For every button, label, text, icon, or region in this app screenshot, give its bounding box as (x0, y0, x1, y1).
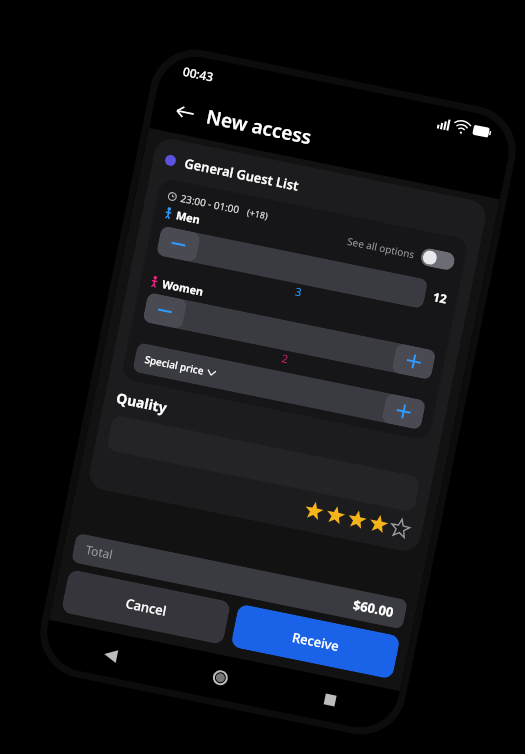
staticText: Women (161, 276, 205, 299)
button[interactable]: Decrease (142, 292, 187, 329)
staticText: (+18) (246, 205, 269, 221)
button[interactable]: Add special price (381, 393, 426, 430)
button[interactable]: Back (168, 95, 201, 128)
button[interactable]: Cancel (61, 569, 231, 645)
button[interactable]: Increase (391, 343, 436, 380)
staticText: New access (204, 103, 314, 150)
staticText: See all options (346, 234, 416, 261)
button[interactable]: See all options toggle (419, 247, 456, 271)
staticText: Special price (144, 352, 205, 378)
staticText: 00:43 (182, 63, 215, 85)
staticText: Men (175, 207, 202, 227)
button[interactable]: Recents (317, 686, 343, 712)
staticText: Cancel (124, 594, 169, 620)
staticText: 2 (280, 350, 290, 366)
button[interactable]: Back (97, 642, 123, 668)
button[interactable]: Receive (230, 603, 401, 679)
staticText: Receive (291, 628, 341, 655)
button[interactable]: Home (207, 664, 233, 690)
button[interactable]: Decrease (156, 225, 201, 263)
staticText: $60.00 (351, 595, 395, 621)
staticText: 23:00 - 01:00 (179, 191, 241, 217)
staticText: General Guest List (183, 154, 300, 195)
staticText: 3 (294, 284, 304, 300)
staticText: 12 (432, 288, 449, 307)
staticText: Quality (115, 388, 169, 417)
staticText: Total (84, 541, 115, 562)
